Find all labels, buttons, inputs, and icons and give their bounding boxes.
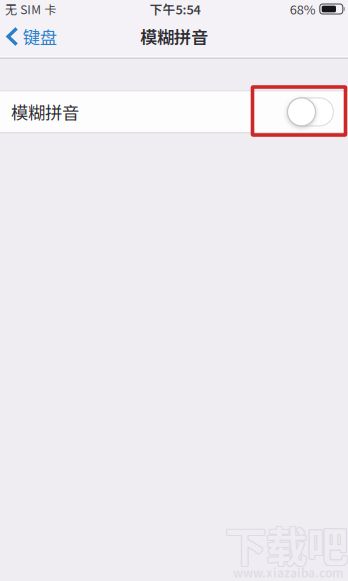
- staticText: 模糊拼音: [11, 99, 79, 124]
- staticText: 卡: [44, 0, 56, 18]
- staticText: 下载吧: [226, 514, 348, 574]
- staticText: 下载吧: [224, 514, 347, 574]
- staticText: 68%: [290, 0, 316, 18]
- staticText: 下载吧: [225, 513, 348, 573]
- staticText: 无: [5, 0, 17, 18]
- staticText: 下午5:54: [149, 0, 200, 18]
- staticText: 下载吧: [226, 515, 348, 575]
- staticText: 下载吧: [224, 513, 347, 573]
- staticText: 下载吧: [224, 515, 347, 575]
- staticText: www.xiazaiba.com: [233, 564, 343, 581]
- staticText: 下载吧: [225, 514, 348, 574]
- button[interactable]: 键盘: [0, 17, 67, 55]
- button[interactable]: 模糊拼音: [0, 91, 348, 132]
- staticText: 模糊拼音: [140, 24, 208, 49]
- staticText: 下载吧: [226, 513, 348, 573]
- staticText: SIM: [20, 0, 41, 18]
- staticText: 下载吧: [225, 515, 348, 575]
- staticText: 键盘: [23, 24, 57, 49]
